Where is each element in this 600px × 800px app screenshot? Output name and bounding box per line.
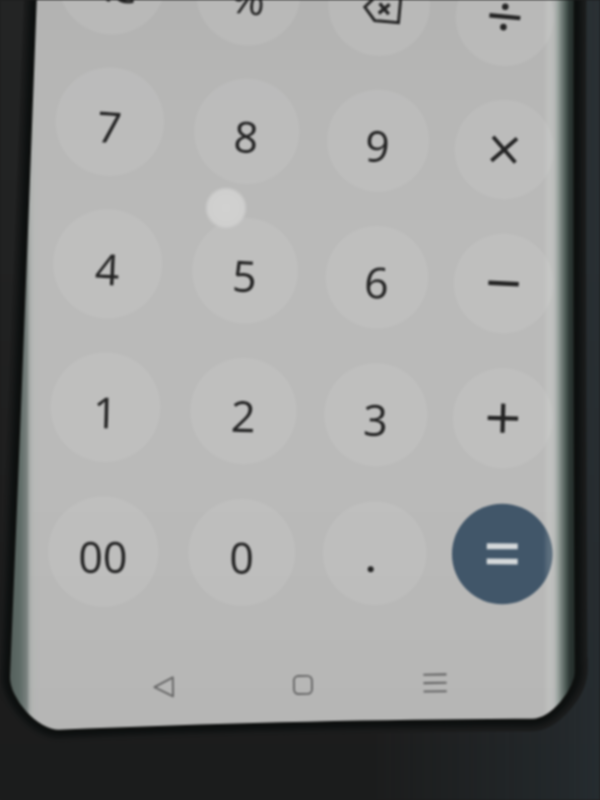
- button[interactable]: Recents: [409, 661, 461, 705]
- button[interactable]: 2: [189, 357, 297, 465]
- button[interactable]: Back: [138, 665, 190, 709]
- button[interactable]: 3: [322, 361, 430, 469]
- button[interactable]: 00: [49, 498, 157, 606]
- button[interactable]: 5: [191, 217, 299, 325]
- button[interactable]: Clear: [58, 0, 166, 35]
- button[interactable]: Divide: [451, 0, 559, 71]
- button[interactable]: Multiply: [450, 96, 558, 204]
- button[interactable]: Decimal point: [321, 499, 429, 607]
- button[interactable]: Backspace: [325, 0, 433, 59]
- button[interactable]: 6: [323, 223, 431, 331]
- button[interactable]: 0: [188, 498, 296, 606]
- button[interactable]: Equals: [448, 500, 556, 608]
- button[interactable]: Home: [277, 663, 329, 707]
- button[interactable]: 1: [51, 353, 159, 461]
- button[interactable]: Minus: [450, 229, 558, 337]
- button[interactable]: 9: [324, 87, 432, 195]
- button[interactable]: 8: [193, 77, 301, 185]
- button[interactable]: 7: [56, 68, 164, 176]
- button[interactable]: Plus: [449, 364, 557, 472]
- button[interactable]: Percent: [194, 0, 302, 47]
- button[interactable]: 4: [54, 210, 162, 318]
